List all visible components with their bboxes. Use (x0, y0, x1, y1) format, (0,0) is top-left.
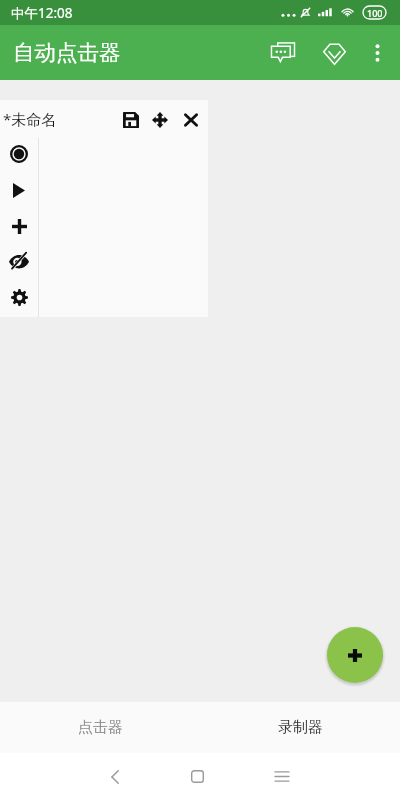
button[interactable]: Record (2, 137, 36, 171)
staticText: 录制器 (278, 718, 323, 737)
button[interactable]: Settings (2, 280, 36, 314)
button[interactable]: Save (118, 107, 144, 133)
button[interactable]: Close (178, 107, 204, 133)
button[interactable]: Play (2, 173, 36, 207)
button[interactable]: More options (355, 31, 399, 75)
button[interactable]: 录制器 (200, 702, 400, 753)
button[interactable]: Home (173, 753, 221, 800)
button[interactable]: Hide (2, 243, 36, 277)
button[interactable]: 点击器 (0, 702, 200, 753)
staticText: 点击器 (78, 718, 123, 737)
staticText: *未命名 (3, 109, 57, 129)
button[interactable]: Feedback (259, 29, 307, 77)
staticText: 100 (367, 7, 383, 19)
button[interactable]: Move (147, 107, 173, 133)
button[interactable]: Add step (2, 209, 36, 243)
button[interactable]: Premium (310, 29, 358, 77)
button[interactable]: Recents (258, 753, 306, 800)
staticText: 自动点击器 (13, 39, 121, 66)
button[interactable]: Back (91, 753, 139, 800)
staticText: 中午12:08 (11, 4, 73, 22)
button[interactable]: Add (327, 627, 383, 683)
